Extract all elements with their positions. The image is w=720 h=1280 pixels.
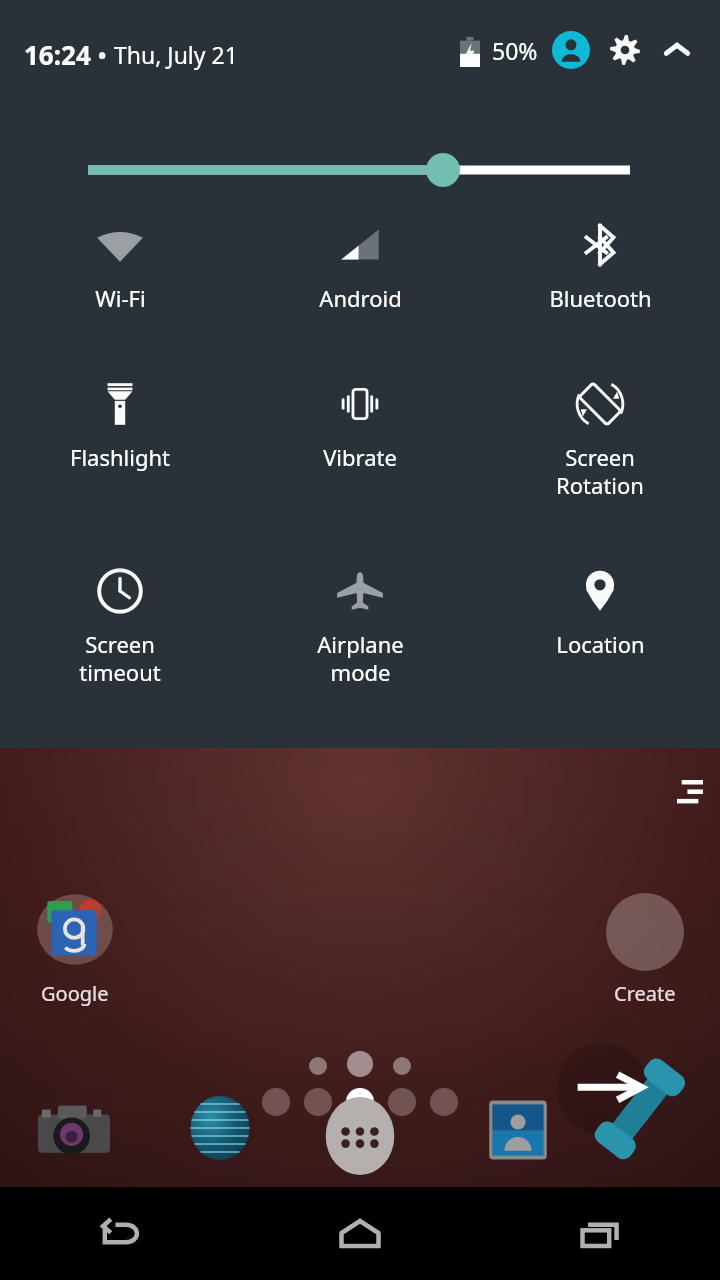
staticText: 16:24: [24, 37, 91, 72]
button[interactable]: Create: [592, 890, 697, 1007]
staticText: •: [98, 40, 107, 70]
button[interactable]: Back: [0, 1187, 240, 1280]
button[interactable]: Home: [240, 1187, 480, 1280]
button[interactable]: Phone: [548, 1034, 696, 1182]
staticText: Google: [41, 980, 109, 1007]
staticText: Bluetooth: [549, 283, 652, 313]
staticText: Screen Rotation: [556, 442, 644, 500]
button[interactable]: Screen timeout: [0, 561, 240, 691]
staticText: Android: [319, 283, 402, 313]
button[interactable]: Vibrate: [240, 374, 480, 476]
button[interactable]: Bluetooth: [480, 215, 720, 317]
button[interactable]: Contacts: [468, 1086, 568, 1174]
button[interactable]: Overview: [668, 768, 712, 812]
button[interactable]: Apps: [320, 1096, 400, 1176]
staticText: Wi-Fi: [95, 283, 146, 313]
staticText: Thu, July 21: [114, 39, 238, 70]
other: Page indicator: [290, 1046, 430, 1106]
button[interactable]: Collapse: [656, 29, 698, 71]
staticText: Vibrate: [323, 442, 397, 472]
button[interactable]: [88, 142, 630, 198]
staticText: Location: [556, 629, 645, 659]
button[interactable]: Airplane mode: [240, 561, 480, 691]
staticText: Airplane mode: [317, 629, 404, 687]
button[interactable]: Recents: [480, 1187, 720, 1280]
staticText: Screen timeout: [79, 629, 161, 687]
staticText: Create: [614, 980, 676, 1007]
button[interactable]: User profile: [552, 31, 590, 69]
button[interactable]: Browser: [170, 1084, 270, 1172]
staticText: Flashlight: [70, 442, 170, 472]
staticText: 50%: [492, 35, 538, 66]
button[interactable]: Location: [480, 561, 720, 663]
button[interactable]: Flashlight: [0, 374, 240, 476]
button[interactable]: Android: [240, 215, 480, 317]
button[interactable]: Google: [22, 890, 127, 1007]
button[interactable]: Wi-Fi: [0, 215, 240, 317]
button[interactable]: Screen Rotation: [480, 374, 720, 504]
button[interactable]: Camera: [24, 1088, 124, 1176]
button[interactable]: Settings: [604, 29, 646, 71]
